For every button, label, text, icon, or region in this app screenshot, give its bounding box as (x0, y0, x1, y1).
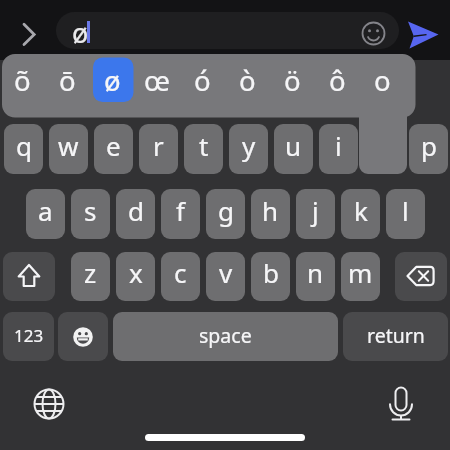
button[interactable]: m (341, 252, 380, 301)
staticText: ô (329, 62, 346, 99)
button[interactable] (56, 12, 399, 49)
button[interactable]: 123 (3, 312, 54, 361)
staticText: v (219, 255, 233, 290)
staticText: ø (72, 14, 89, 51)
button[interactable]: d (116, 189, 155, 239)
staticText: œ (144, 62, 171, 99)
staticText: y (242, 128, 256, 163)
staticText: f (176, 193, 185, 228)
button[interactable]: ö (270, 55, 314, 106)
staticText: q (16, 128, 32, 163)
button[interactable]: i (319, 124, 358, 174)
staticText: w (58, 128, 79, 163)
staticText: d (128, 193, 144, 228)
button[interactable] (404, 17, 444, 53)
button[interactable]: ō (45, 55, 89, 106)
button[interactable]: x (116, 252, 155, 301)
button[interactable]: w (49, 124, 88, 174)
button[interactable]: ó (180, 55, 224, 106)
staticText: space (199, 322, 252, 349)
button[interactable]: l (386, 189, 425, 239)
staticText: ö (284, 62, 301, 99)
button[interactable]: a (26, 189, 65, 239)
staticText: u (285, 128, 302, 163)
staticText: return (367, 322, 425, 349)
staticText: z (84, 255, 97, 290)
button[interactable]: n (296, 252, 335, 301)
button[interactable]: b (251, 252, 290, 301)
button[interactable]: j (296, 189, 335, 239)
staticText: x (129, 255, 143, 290)
staticText: r (153, 128, 164, 163)
button[interactable]: h (251, 189, 290, 239)
staticText: i (335, 128, 342, 163)
staticText: k (354, 193, 368, 228)
button[interactable]: q (4, 124, 43, 174)
button[interactable]: ø (90, 55, 134, 106)
staticText: m (348, 255, 373, 290)
button[interactable]: t (184, 124, 223, 174)
button[interactable]: space (113, 312, 338, 361)
button[interactable]: z (71, 252, 110, 301)
staticText: 123 (14, 324, 44, 347)
staticText: ø (104, 62, 121, 99)
button[interactable] (3, 252, 55, 301)
staticText: l (402, 193, 409, 228)
button[interactable]: s (71, 189, 110, 239)
staticText: ó (194, 62, 211, 99)
button[interactable]: v (206, 252, 245, 301)
button[interactable]: p (409, 124, 448, 174)
button[interactable]: ò (225, 55, 269, 106)
button[interactable]: f (161, 189, 200, 239)
button[interactable]: õ (0, 55, 44, 106)
button[interactable]: u (274, 124, 313, 174)
staticText: h (262, 193, 279, 228)
staticText: õ (14, 62, 31, 99)
staticText: o (374, 62, 391, 99)
button[interactable]: c (161, 252, 200, 301)
button[interactable]: œ (135, 55, 179, 106)
staticText: g (218, 193, 234, 228)
button[interactable]: return (343, 312, 448, 361)
staticText: c (174, 255, 187, 290)
staticText: a (38, 193, 53, 228)
staticText: b (263, 255, 279, 290)
button[interactable]: y (229, 124, 268, 174)
button[interactable] (58, 312, 108, 361)
staticText: p (421, 128, 437, 163)
staticText: ò (239, 62, 256, 99)
button[interactable]: k (341, 189, 380, 239)
button[interactable] (383, 383, 419, 423)
button[interactable]: g (206, 189, 245, 239)
staticText: j (312, 193, 319, 228)
button[interactable] (31, 386, 67, 422)
staticText: e (106, 128, 121, 163)
staticText: n (307, 255, 324, 290)
button[interactable] (14, 20, 42, 50)
button[interactable]: ô (315, 55, 359, 106)
button[interactable]: e (94, 124, 133, 174)
staticText: t (199, 128, 209, 163)
button[interactable] (395, 252, 447, 301)
button[interactable]: r (139, 124, 178, 174)
button[interactable]: o (360, 55, 404, 106)
staticText: s (84, 193, 97, 228)
staticText: ō (59, 62, 76, 99)
